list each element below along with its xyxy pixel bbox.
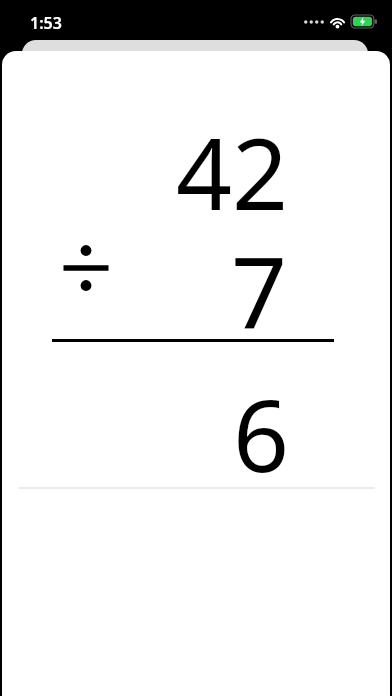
- button[interactable]: 42: [2, 51, 390, 696]
- staticText: 7: [57, 224, 287, 357]
- staticText: 42: [58, 105, 288, 238]
- staticText: 1:53: [30, 12, 62, 34]
- staticText: 6: [59, 367, 289, 500]
